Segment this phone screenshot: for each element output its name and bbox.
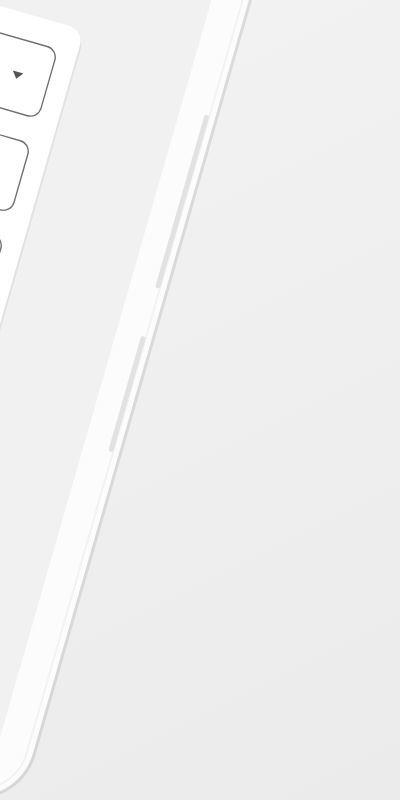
button[interactable]: Filter form screen bbox=[0, 0, 400, 800]
